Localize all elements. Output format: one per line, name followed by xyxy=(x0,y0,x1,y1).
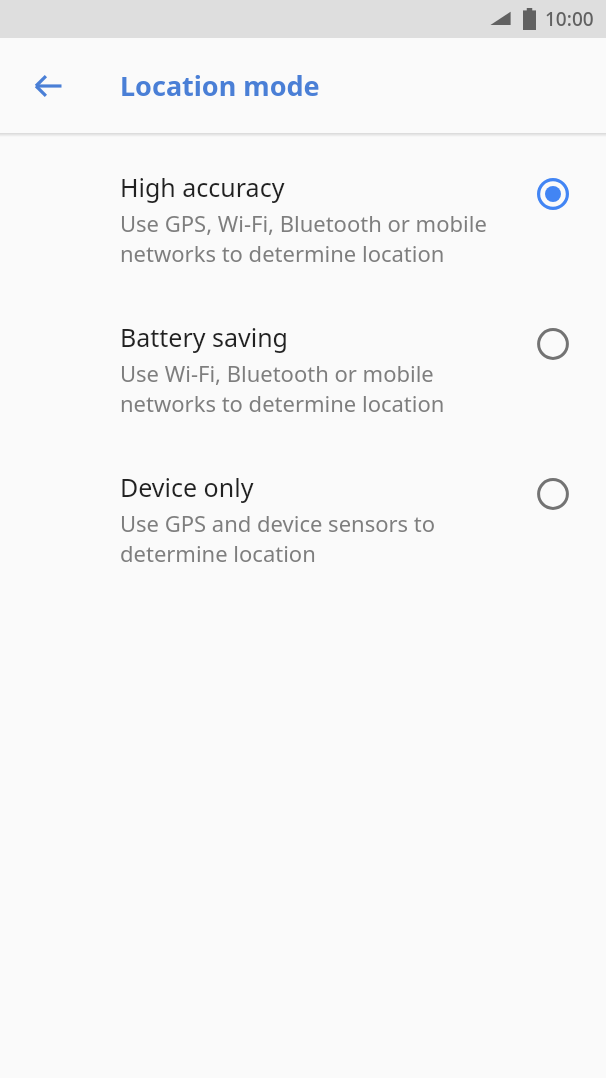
staticText: Use GPS, Wi-Fi, Bluetooth or mobile netw… xyxy=(120,208,487,268)
staticText: Battery saving xyxy=(120,320,288,354)
staticText: Device only xyxy=(120,470,254,504)
button[interactable]: Device only xyxy=(531,472,575,516)
staticText: Use Wi-Fi, Bluetooth or mobile networks … xyxy=(120,358,445,418)
button[interactable]: Battery saving xyxy=(531,322,575,366)
button[interactable]: High accuracy xyxy=(531,172,575,216)
staticText: High accuracy xyxy=(120,170,285,204)
button[interactable]: High accuracy xyxy=(0,152,606,302)
staticText: Location mode xyxy=(120,67,320,104)
button[interactable]: Back xyxy=(22,60,74,112)
staticText: 10:00 xyxy=(545,6,594,32)
button[interactable]: Device only xyxy=(0,452,606,602)
staticText: Use GPS and device sensors to determine … xyxy=(120,508,436,568)
button[interactable]: Battery saving xyxy=(0,302,606,452)
